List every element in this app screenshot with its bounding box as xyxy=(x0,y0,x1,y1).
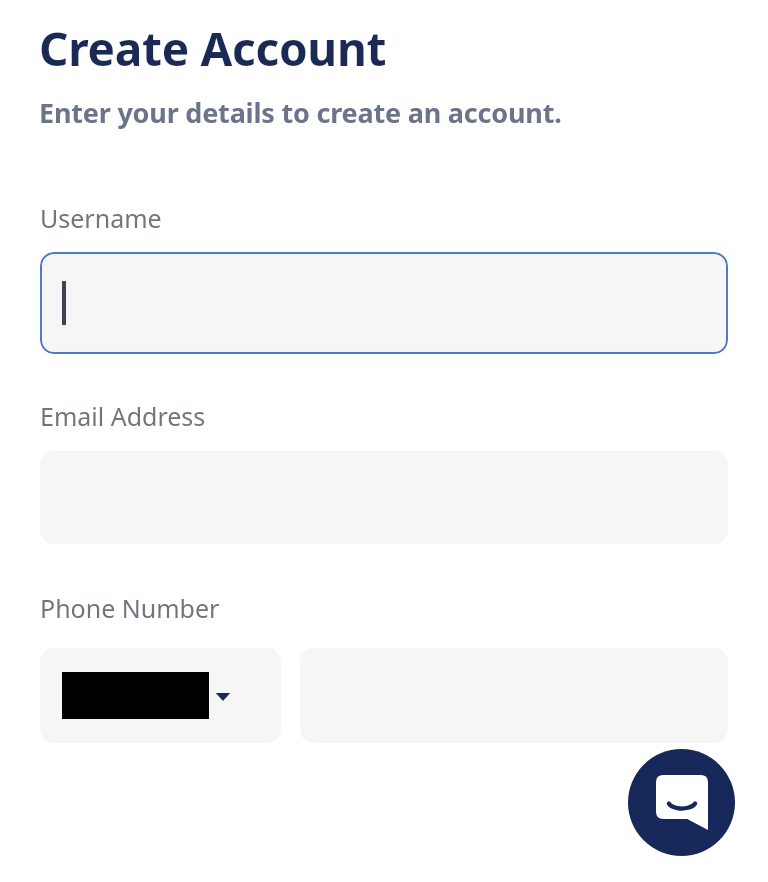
button[interactable] xyxy=(40,252,728,354)
staticText: Username xyxy=(40,201,162,235)
staticText: Phone Number xyxy=(40,591,220,625)
staticText: Create Account xyxy=(39,17,387,80)
button[interactable]: Open chat support xyxy=(628,749,735,856)
staticText: Enter your details to create an account. xyxy=(39,94,562,131)
staticText: Email Address xyxy=(40,399,206,433)
button[interactable]: Select country code xyxy=(40,648,281,743)
